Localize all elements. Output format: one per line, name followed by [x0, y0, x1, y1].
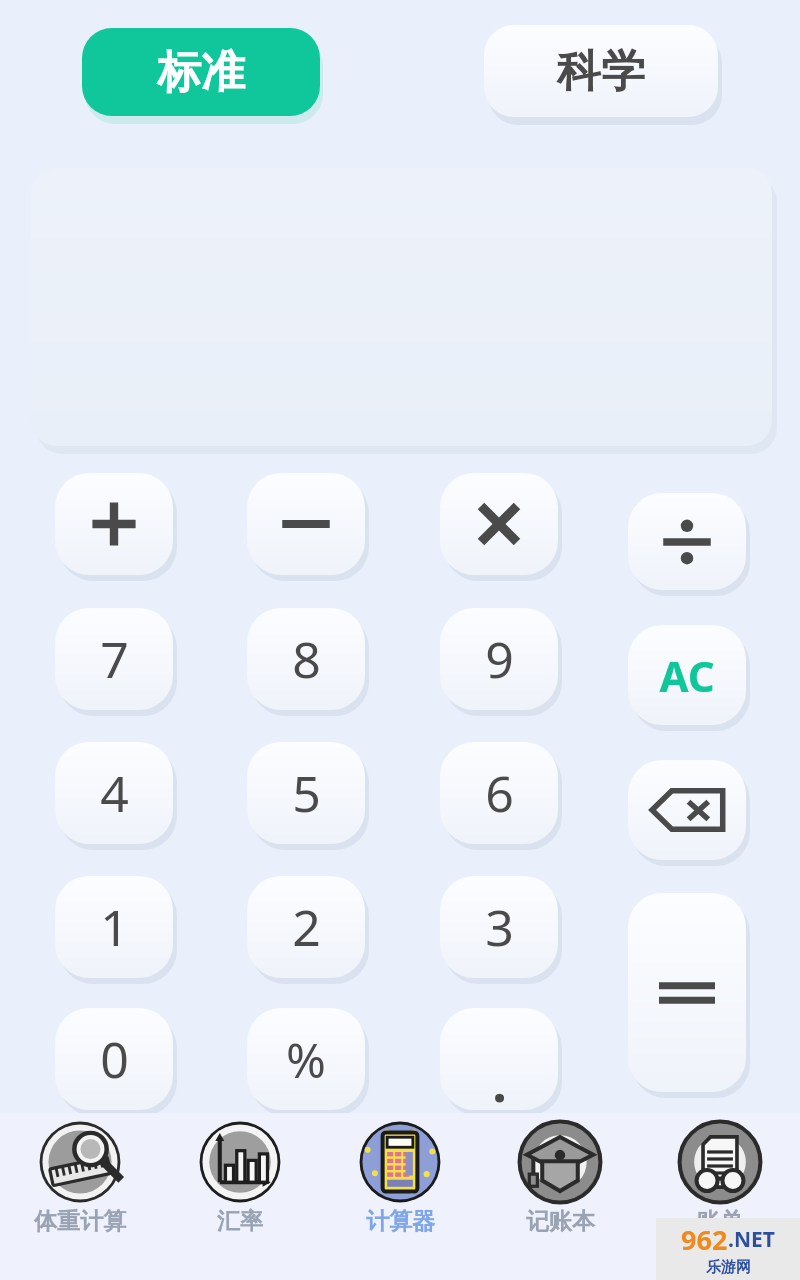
- button[interactable]: 4: [55, 742, 173, 844]
- button[interactable]: 0: [55, 1008, 173, 1110]
- staticText: 记账本: [526, 1207, 595, 1236]
- staticText: 计算器: [366, 1207, 435, 1236]
- staticText: AC: [659, 647, 715, 704]
- button[interactable]: Minus: [247, 473, 365, 575]
- button[interactable]: 2: [247, 876, 365, 978]
- staticText: 9: [485, 625, 514, 693]
- button[interactable]: Divide: [628, 493, 746, 590]
- button[interactable]: Percent: [247, 1008, 365, 1110]
- staticText: 8: [292, 625, 321, 693]
- button[interactable]: 1: [55, 876, 173, 978]
- staticText: 7: [100, 625, 129, 693]
- button[interactable]: 账单: [640, 1113, 800, 1236]
- button[interactable]: 7: [55, 608, 173, 710]
- button[interactable]: Equals: [628, 893, 746, 1092]
- staticText: 4: [100, 759, 129, 827]
- button[interactable]: Multiply: [440, 473, 558, 575]
- button[interactable]: 5: [247, 742, 365, 844]
- staticText: 5: [292, 759, 321, 827]
- button[interactable]: 3: [440, 876, 558, 978]
- staticText: 账单: [697, 1207, 743, 1236]
- button[interactable]: 9: [440, 608, 558, 710]
- staticText: 3: [485, 893, 514, 961]
- button[interactable]: 8: [247, 608, 365, 710]
- staticText: 汇率: [217, 1207, 263, 1236]
- button[interactable]: AC: [628, 625, 746, 725]
- staticText: 乐游网: [706, 1258, 751, 1277]
- button[interactable]: 汇率: [160, 1113, 320, 1236]
- staticText: 标准: [157, 45, 245, 100]
- staticText: %: [286, 1027, 326, 1092]
- button[interactable]: Backspace: [628, 760, 746, 860]
- staticText: 1: [100, 893, 129, 961]
- button[interactable]: 6: [440, 742, 558, 844]
- staticText: 0: [100, 1025, 129, 1093]
- button[interactable]: 计算器: [320, 1113, 480, 1236]
- button[interactable]: Plus: [55, 473, 173, 575]
- staticText: 2: [292, 893, 321, 961]
- staticText: 科学: [557, 44, 645, 99]
- button[interactable]: 体重计算: [0, 1113, 160, 1236]
- staticText: 6: [485, 759, 514, 827]
- button[interactable]: 记账本: [480, 1113, 640, 1236]
- button[interactable]: 标准: [82, 28, 320, 116]
- staticText: .NET: [728, 1225, 775, 1254]
- button[interactable]: Decimal point: [440, 1008, 558, 1110]
- staticText: 体重计算: [34, 1207, 126, 1236]
- button[interactable]: 科学: [484, 25, 718, 117]
- staticText: 962: [681, 1221, 728, 1258]
- staticText: .: [492, 1046, 507, 1110]
